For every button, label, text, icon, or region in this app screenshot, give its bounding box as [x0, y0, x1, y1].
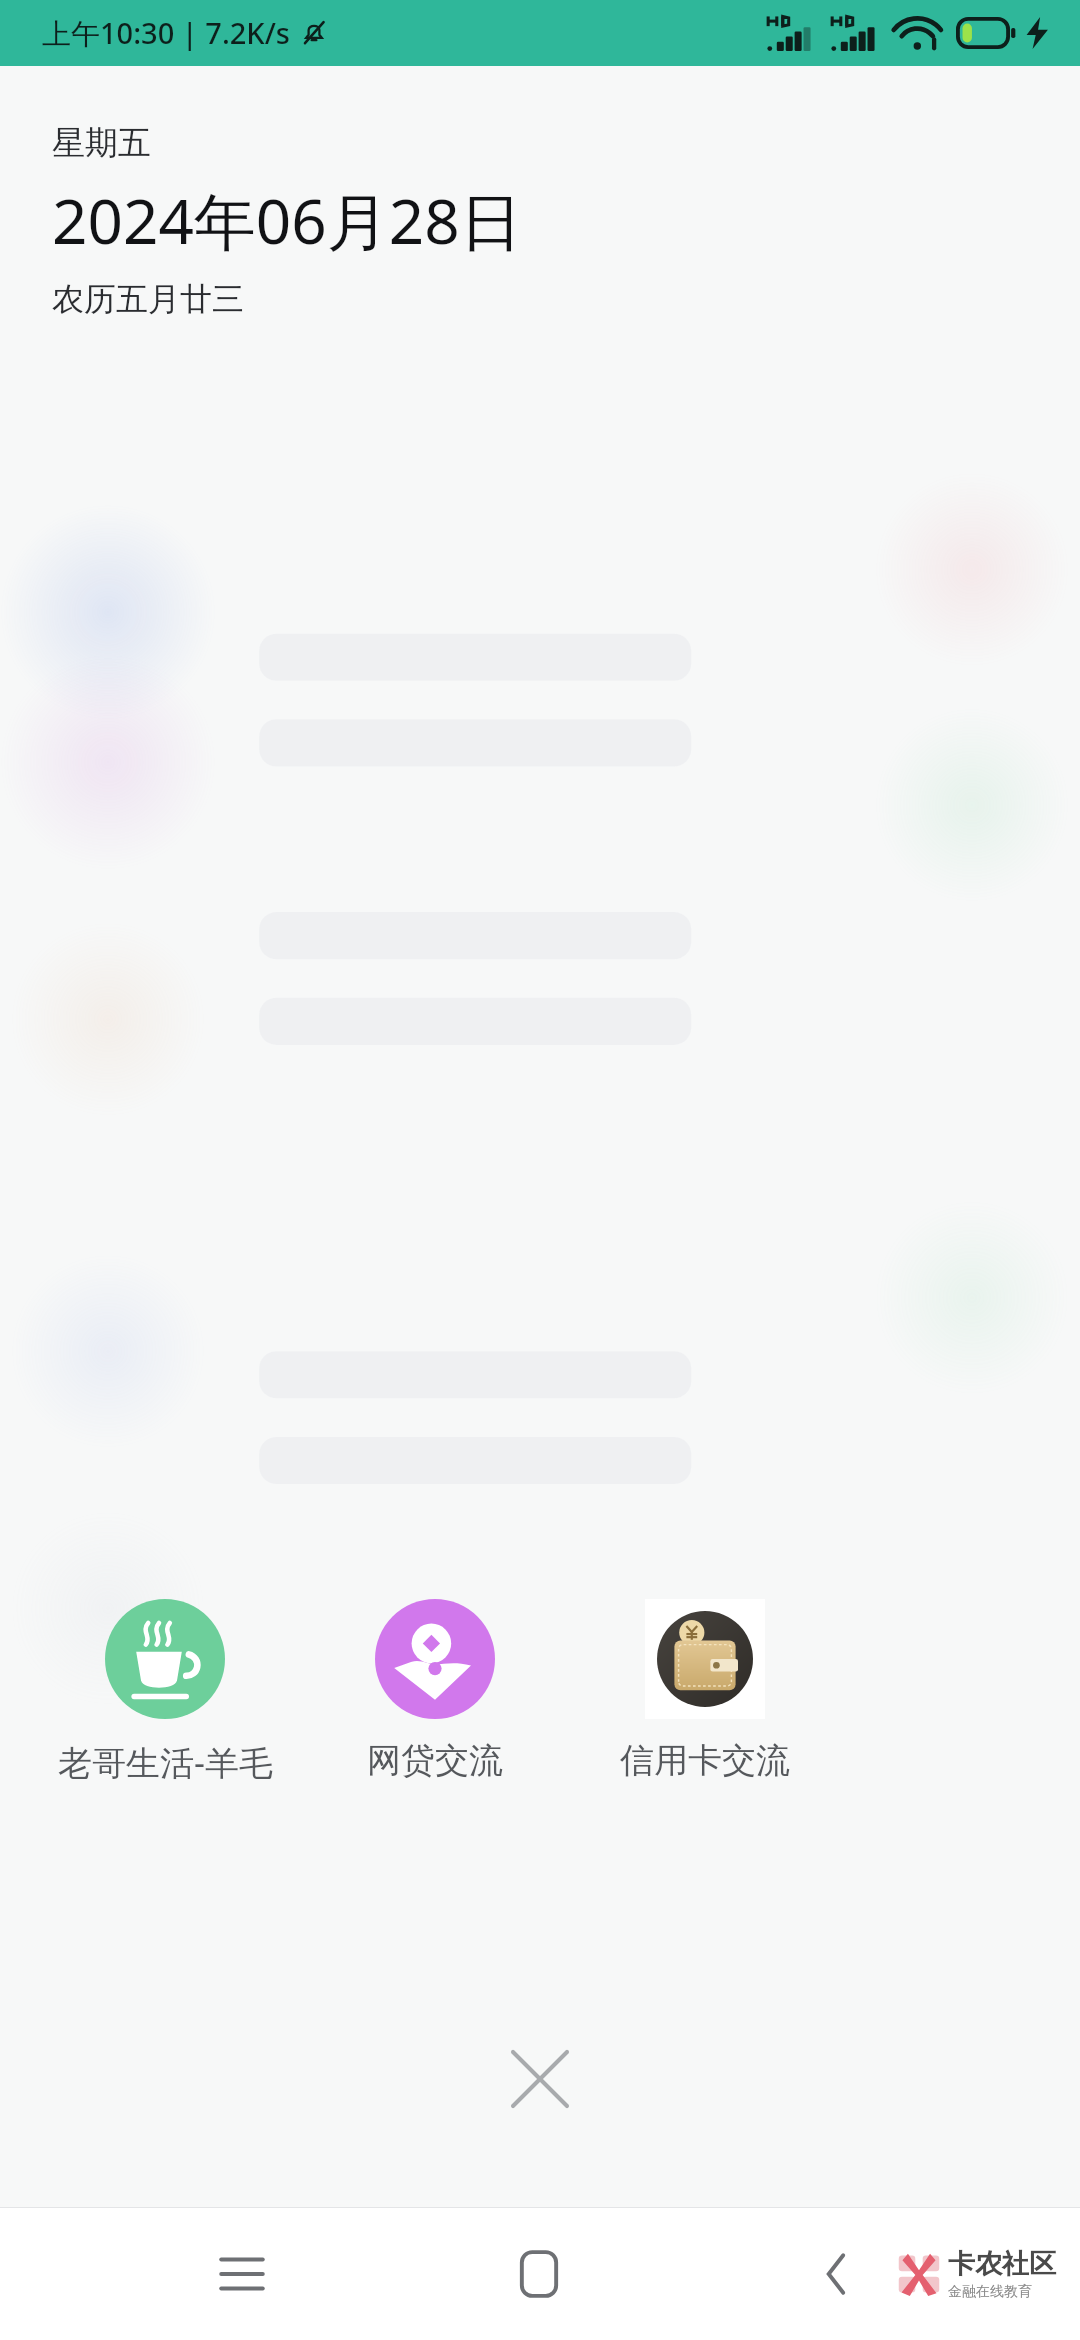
button[interactable]: 主屏幕: [484, 2219, 594, 2329]
button[interactable]: 信用卡交流: [570, 1595, 840, 1786]
staticText: 2024年06月28日: [52, 178, 522, 263]
button[interactable]: 老哥生活-羊毛: [30, 1595, 300, 1789]
staticText: 星期五: [52, 122, 151, 164]
staticText: 金融在线教育: [948, 2283, 1032, 2301]
staticText: 信用卡交流: [620, 1739, 790, 1782]
button[interactable]: 返回: [782, 2219, 892, 2329]
staticText: 上午10:30 | 7.2K/s: [42, 13, 290, 53]
button[interactable]: 最近任务: [187, 2219, 297, 2329]
staticText: 卡农社区: [948, 2247, 1056, 2281]
staticText: 网贷交流: [367, 1739, 503, 1782]
button[interactable]: 网贷交流: [300, 1595, 570, 1786]
button[interactable]: 关闭: [485, 2024, 595, 2134]
staticText: 老哥生活-羊毛: [58, 1739, 273, 1785]
staticText: 农历五月廿三: [52, 279, 244, 319]
